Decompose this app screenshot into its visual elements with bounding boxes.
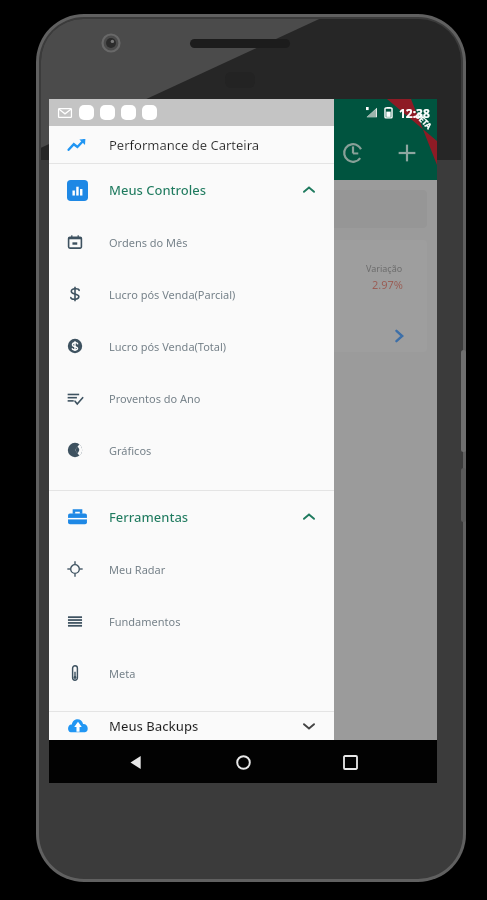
staticText: Lucro pós Venda(Parcial)	[109, 287, 236, 302]
button[interactable]: Proventos do Ano	[49, 372, 334, 424]
staticText: Fundamentos	[109, 614, 181, 629]
button[interactable]: Recentes	[330, 742, 370, 782]
staticText: Meta	[109, 666, 136, 681]
button[interactable]: Detalhes	[383, 320, 415, 352]
button[interactable]: Voltar	[116, 742, 156, 782]
button[interactable]: Atualizar	[333, 133, 373, 173]
button[interactable]: Variação	[59, 240, 427, 352]
button[interactable]: Lucro pós Venda(Parcial)	[49, 268, 334, 320]
staticText: Meus Controles	[109, 181, 207, 199]
staticText: Ferramentas	[109, 508, 189, 526]
staticText: Performance de Carteira	[109, 136, 260, 154]
button[interactable]: Ordens do Mês	[49, 216, 334, 268]
staticText: 12:38	[399, 105, 430, 121]
staticText: Lucro pós Venda(Total)	[109, 339, 227, 354]
button[interactable]: Início	[223, 742, 263, 782]
staticText: Meu Radar	[109, 562, 166, 577]
button[interactable]: Gráficos	[49, 424, 334, 476]
staticText: 2.97%	[372, 277, 403, 292]
staticText: Meus Backups	[109, 717, 199, 735]
staticText: Gráficos	[109, 443, 152, 458]
button[interactable]	[59, 190, 427, 228]
button[interactable]: Ferramentas	[49, 491, 334, 543]
button[interactable]: Lucro pós Venda(Total)	[49, 320, 334, 372]
staticText: Proventos do Ano	[109, 391, 201, 406]
staticText: Variação	[366, 262, 403, 274]
button[interactable]: Meu Radar	[49, 543, 334, 595]
button[interactable]: Meus Controles	[49, 164, 334, 216]
button[interactable]: Fundamentos	[49, 595, 334, 647]
button[interactable]: Adicionar	[387, 133, 427, 173]
staticText: BETA	[413, 109, 435, 131]
button[interactable]: Performance de Carteira	[49, 126, 334, 163]
button[interactable]: Meta	[49, 647, 334, 699]
button[interactable]: Meus Backups	[49, 712, 334, 740]
staticText: Ordens do Mês	[109, 235, 188, 250]
